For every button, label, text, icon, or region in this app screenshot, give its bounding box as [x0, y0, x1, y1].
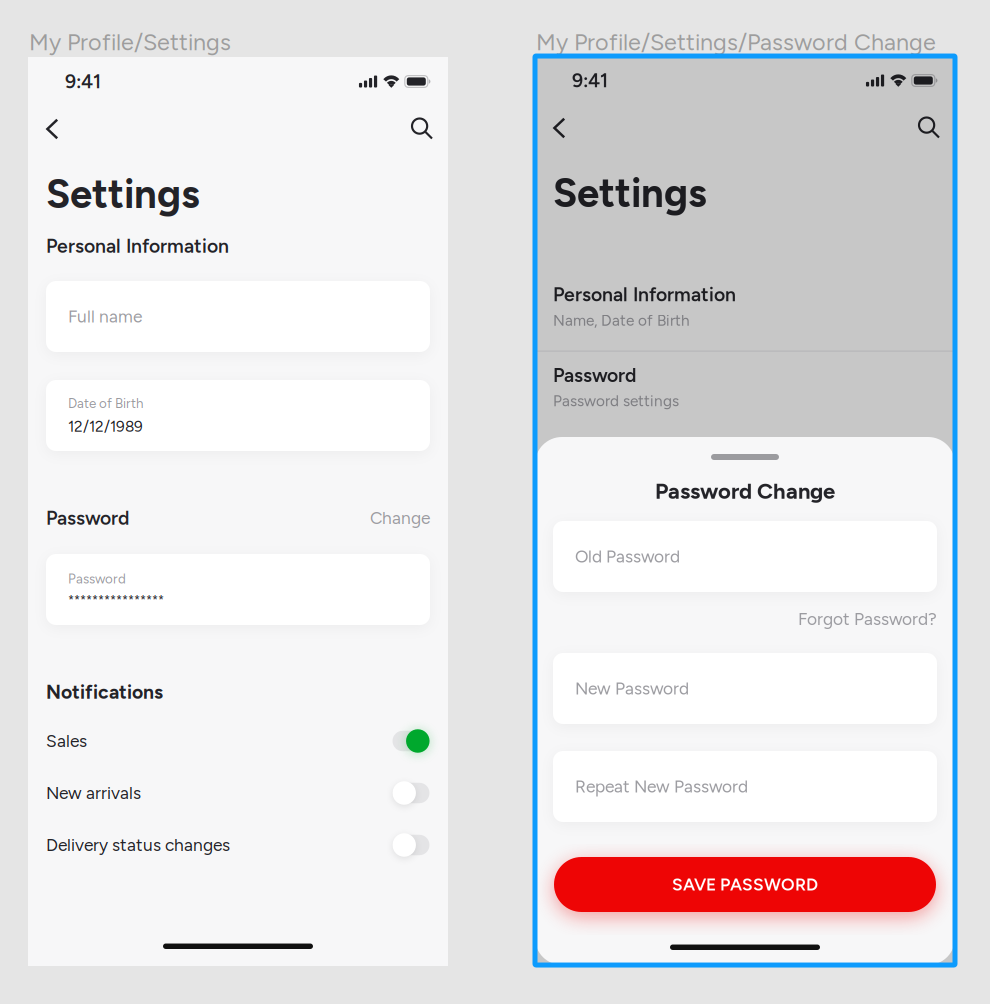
- staticText: Name, Date of Birth: [553, 311, 690, 330]
- staticText: Full name: [68, 306, 142, 327]
- button[interactable]: Search: [900, 105, 940, 147]
- staticText: Password: [68, 571, 126, 587]
- staticText: Date of Birth: [68, 395, 143, 411]
- staticText: ****************: [68, 593, 164, 608]
- staticText: Personal Information: [553, 283, 736, 306]
- staticText: Password: [553, 364, 636, 387]
- staticText: 9:41: [65, 70, 101, 93]
- button[interactable]: Forgot Password?: [553, 610, 937, 628]
- staticText: Notifications: [46, 680, 163, 704]
- staticText: Old Password: [575, 546, 680, 567]
- staticText: Sales: [46, 731, 87, 751]
- staticText: Change: [370, 508, 430, 528]
- staticText: Repeat New Password: [575, 776, 748, 797]
- staticText: Password settings: [553, 392, 679, 410]
- staticText: Forgot Password?: [798, 609, 937, 629]
- button[interactable]: Change: [370, 508, 430, 528]
- button[interactable]: Disabled: [392, 833, 430, 857]
- staticText: New arrivals: [46, 783, 141, 803]
- staticText: My Profile/Settings/Password Change: [536, 28, 936, 56]
- staticText: Personal Information: [46, 234, 229, 258]
- staticText: Settings: [553, 169, 707, 217]
- staticText: Settings: [46, 170, 200, 218]
- button[interactable]: Password: [553, 364, 937, 410]
- button[interactable]: SAVE PASSWORD: [554, 857, 936, 912]
- staticText: Delivery status changes: [46, 835, 230, 855]
- button[interactable]: Delivery status changes: [46, 832, 430, 858]
- button[interactable]: New arrivals: [46, 780, 430, 806]
- staticText: New Password: [575, 678, 689, 699]
- button[interactable]: Search: [393, 106, 433, 148]
- staticText: SAVE PASSWORD: [672, 874, 818, 895]
- button[interactable]: Disabled: [392, 781, 430, 805]
- button[interactable]: Personal Information: [553, 283, 937, 330]
- button[interactable]: Enabled: [392, 729, 430, 753]
- staticText: 12/12/1989: [68, 417, 143, 436]
- button[interactable]: Back: [553, 105, 593, 147]
- button[interactable]: Back: [46, 106, 86, 148]
- button[interactable]: Sales: [46, 728, 430, 754]
- staticText: Password Change: [655, 478, 835, 504]
- staticText: Password: [46, 506, 129, 530]
- staticText: My Profile/Settings: [29, 28, 231, 56]
- staticText: 9:41: [572, 69, 608, 92]
